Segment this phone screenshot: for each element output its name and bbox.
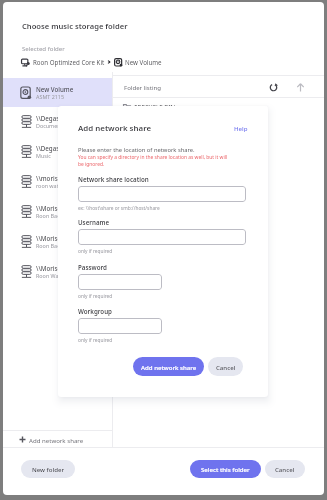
button[interactable]: \\Degas — [3, 106, 112, 136]
staticText: \\Morisot — [36, 264, 64, 272]
staticText: Please enter the location of network sha… — [78, 146, 195, 154]
button[interactable]: Select this folder — [190, 460, 261, 478]
staticText: \\Degas — [36, 144, 60, 152]
button[interactable] — [78, 229, 246, 245]
button[interactable]: \\morisot — [3, 166, 112, 196]
staticText: Roon Optimized Core Kit — [33, 58, 105, 66]
button[interactable] — [78, 274, 162, 290]
button[interactable]: Help — [234, 124, 248, 132]
staticText: Roon Watch Test — [36, 272, 78, 279]
staticText: only if required — [78, 248, 113, 255]
staticText: New Volume — [36, 85, 74, 93]
button[interactable]: Up one level — [291, 78, 309, 96]
button[interactable]: Refresh — [264, 78, 282, 96]
staticText: Documents — [36, 122, 66, 129]
staticText: New folder — [32, 465, 65, 473]
staticText: Music — [36, 152, 51, 159]
button[interactable]: Add network share — [133, 357, 204, 376]
button[interactable]: New folder — [21, 460, 75, 478]
staticText: Password — [78, 263, 107, 271]
button[interactable]: Cancel — [208, 357, 243, 376]
staticText: only if required — [78, 337, 113, 344]
button[interactable]: $RECYCLE.BIN — [112, 98, 324, 116]
staticText: Network share location — [78, 175, 149, 183]
button[interactable]: \\Morisot — [3, 196, 112, 226]
staticText: ex: \\host\share or smb://host/share — [78, 205, 160, 212]
staticText: \\Degas — [36, 114, 60, 122]
staticText: Username — [78, 218, 110, 226]
staticText: Add network share — [29, 436, 84, 444]
button[interactable]: \\Morisot — [3, 256, 112, 286]
staticText: Cancel — [275, 465, 295, 473]
staticText: Roon Backup — [36, 242, 70, 249]
staticText: \\Morisot — [36, 204, 64, 212]
staticText: roon watch — [36, 182, 65, 189]
staticText: Workgroup — [78, 307, 112, 315]
button[interactable]: Cancel — [265, 460, 305, 478]
staticText: Add network share — [78, 123, 152, 134]
button[interactable] — [78, 186, 246, 202]
button[interactable]: \\Morisot — [3, 226, 112, 256]
staticText: \\Morisot — [36, 234, 64, 242]
staticText: ASMT 2115 — [36, 93, 65, 100]
staticText: Cancel — [216, 363, 236, 371]
staticText: Roon Backups — [36, 212, 72, 219]
staticText: Select this folder — [201, 465, 250, 473]
staticText: Choose music storage folder — [22, 21, 128, 31]
staticText: Add network share — [141, 363, 197, 371]
staticText: New Volume — [125, 58, 162, 66]
button[interactable]: Add network share — [3, 431, 112, 448]
staticText: Help — [234, 124, 248, 132]
staticText: \\morisot — [36, 174, 64, 182]
button[interactable]: New Volume — [3, 78, 112, 107]
staticText: You can specify a directory in the share… — [78, 154, 234, 167]
staticText: $RECYCLE.BIN — [134, 103, 176, 111]
button[interactable]: \\Degas — [3, 136, 112, 166]
staticText: Selected folder — [22, 44, 65, 52]
staticText: Folder listing — [124, 83, 162, 91]
staticText: only if required — [78, 293, 113, 300]
button[interactable] — [78, 318, 162, 334]
